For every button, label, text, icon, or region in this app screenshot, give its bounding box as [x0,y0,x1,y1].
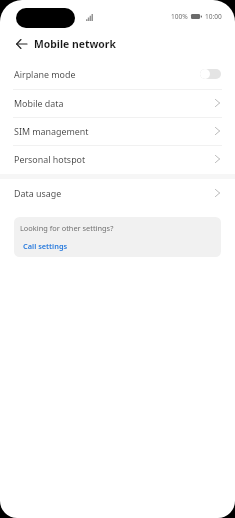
staticText: Mobile network [34,37,116,51]
button[interactable]: Personal hotspot [0,145,235,173]
staticText: Data usage [14,187,62,199]
button[interactable]: Mobile data [0,89,235,117]
staticText: Looking for other settings? [20,223,114,233]
button[interactable]: Call settings [23,241,68,251]
button[interactable]: Airplane mode [0,60,235,88]
staticText: Personal hotspot [14,153,86,165]
staticText: SIM management [14,125,89,137]
button[interactable]: Data usage [0,179,235,207]
staticText: 100% [171,12,188,21]
staticText: 10:00 [205,12,222,21]
button[interactable]: Airplane mode [200,69,221,79]
staticText: Mobile data [14,97,64,109]
button[interactable]: SIM management [0,117,235,145]
button[interactable]: Back [9,32,33,56]
staticText: Call settings [23,241,68,251]
staticText: Airplane mode [14,68,76,80]
